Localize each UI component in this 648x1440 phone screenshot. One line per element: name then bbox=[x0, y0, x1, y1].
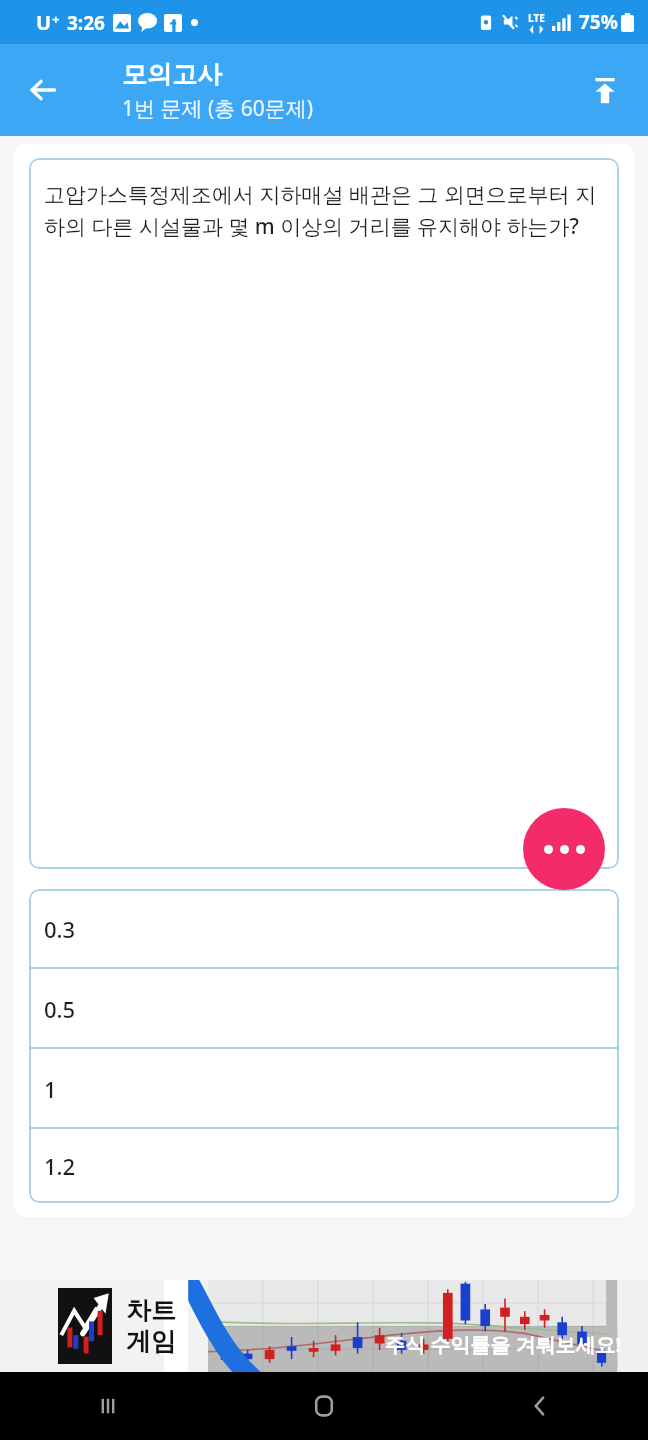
staticText: 주식 수익률을 겨뤄보세요! bbox=[385, 1331, 622, 1358]
staticText: 게임 bbox=[126, 1326, 176, 1357]
staticText: 75% bbox=[579, 9, 618, 35]
button[interactable]: Home bbox=[216, 1372, 432, 1440]
button[interactable]: More options bbox=[523, 808, 605, 890]
staticText: 0.5 bbox=[44, 994, 76, 1024]
button[interactable]: 0.5 bbox=[29, 969, 619, 1049]
staticText: 1.2 bbox=[44, 1151, 76, 1181]
staticText: LTE bbox=[528, 11, 545, 25]
button[interactable]: 1 bbox=[29, 1049, 619, 1129]
staticText: 1 bbox=[44, 1074, 57, 1104]
staticText: U bbox=[36, 9, 52, 36]
button[interactable]: Back bbox=[432, 1372, 648, 1440]
staticText: 1번 문제 (총 60문제) bbox=[122, 94, 314, 123]
button[interactable]: 1.2 bbox=[29, 1129, 619, 1203]
button[interactable]: Recent apps bbox=[0, 1372, 216, 1440]
staticText: 차트 bbox=[126, 1295, 176, 1326]
staticText: 고압가스특정제조에서 지하매설 배관은 그 외면으로부터 지하의 다른 시설물과… bbox=[44, 180, 609, 241]
button[interactable]: Back bbox=[14, 61, 72, 119]
staticText: 0.3 bbox=[44, 914, 76, 944]
staticText: 모의고사 bbox=[122, 59, 222, 90]
button[interactable]: 주식 수익률을 겨뤄보세요! bbox=[0, 1280, 648, 1372]
staticText: 3:26 bbox=[67, 10, 105, 36]
staticText: + bbox=[52, 10, 60, 28]
button[interactable]: Submit bbox=[576, 61, 634, 119]
button[interactable]: 0.3 bbox=[29, 889, 619, 969]
